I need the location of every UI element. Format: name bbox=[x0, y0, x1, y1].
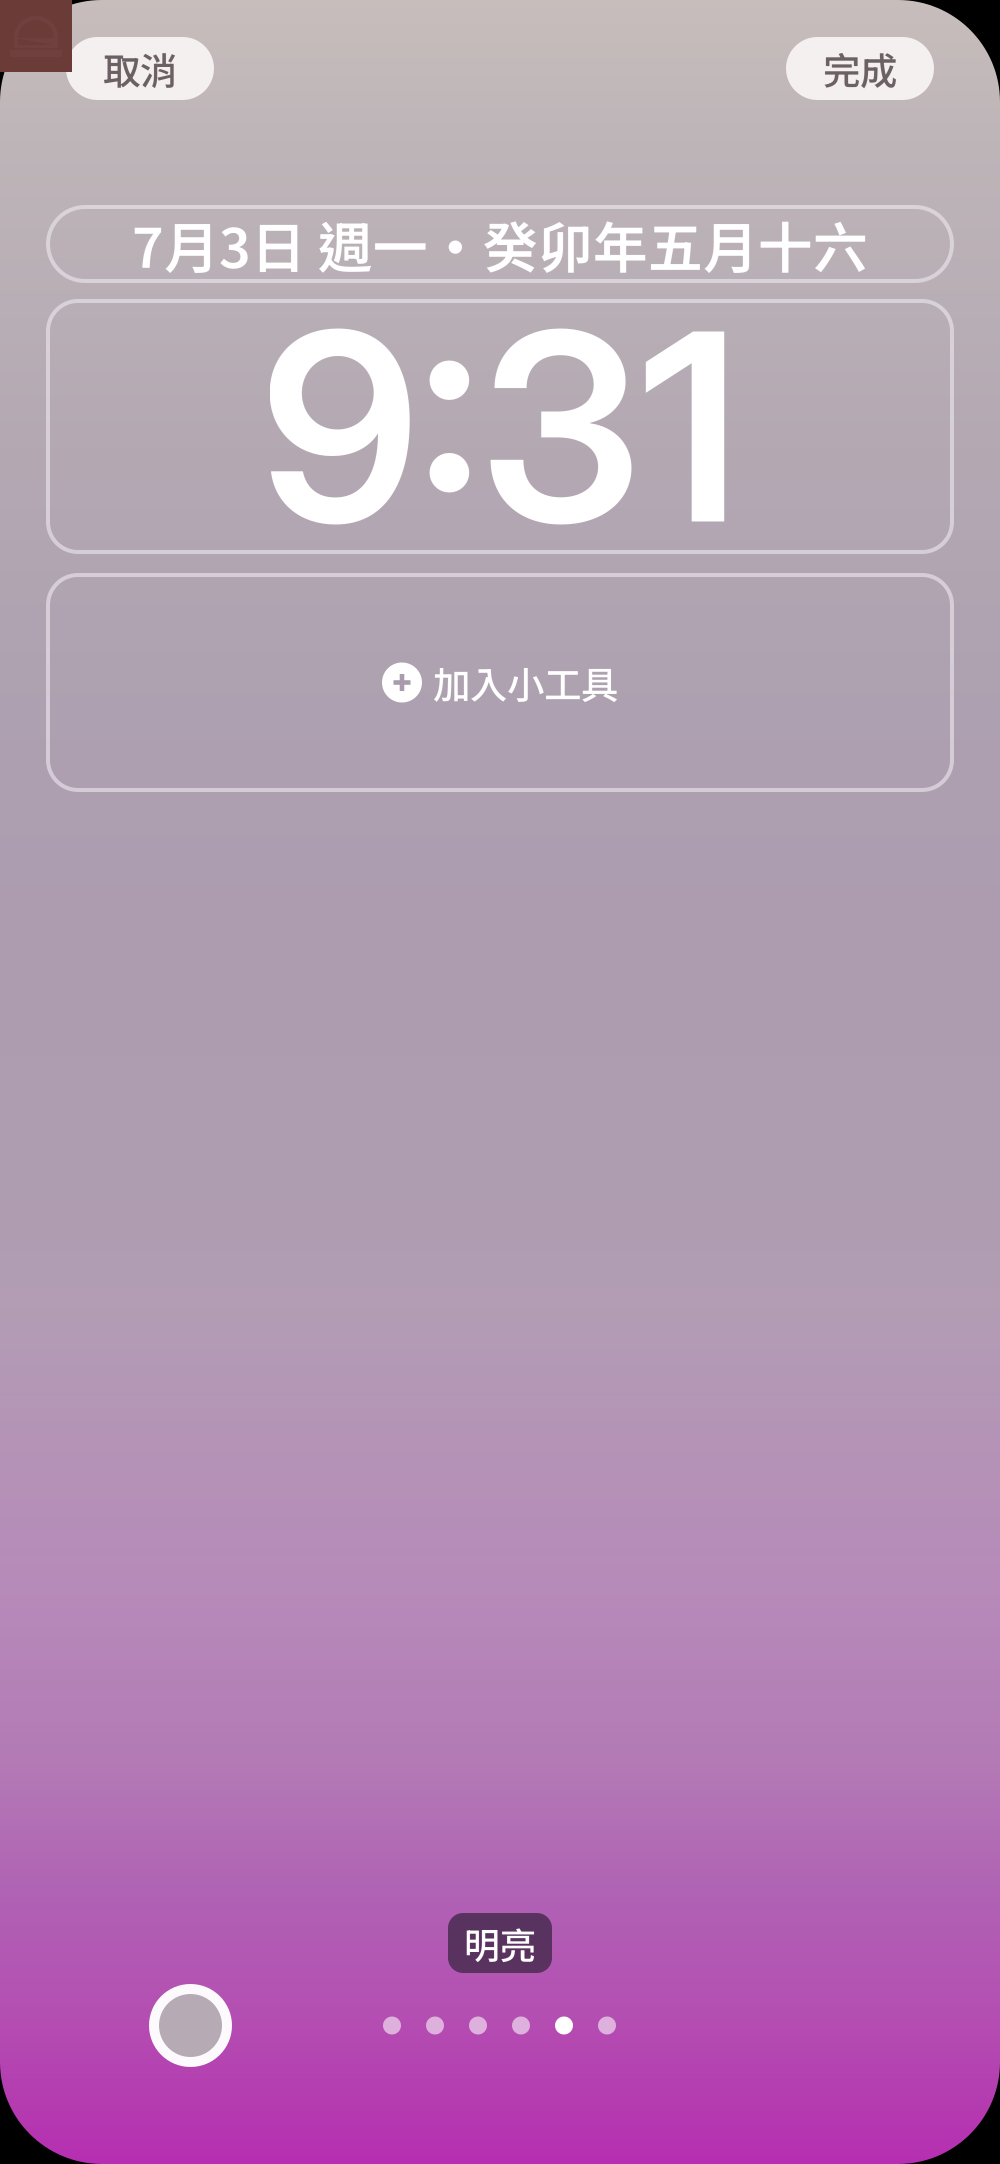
button[interactable]: 加入小工具 bbox=[48, 575, 952, 790]
button[interactable]: 9:31 bbox=[48, 301, 952, 552]
button[interactable]: 7月3日 週一・癸卯年五月十六 bbox=[48, 207, 952, 281]
button[interactable]: 背景 4 bbox=[512, 2016, 530, 2034]
staticText: 明亮 bbox=[464, 1917, 536, 1969]
button[interactable]: 完成 bbox=[786, 37, 934, 100]
button[interactable]: 背景顏色 bbox=[154, 1989, 227, 2062]
button[interactable]: 背景 2 bbox=[426, 2016, 444, 2034]
staticText: 完成 bbox=[823, 41, 897, 96]
staticText: 取消 bbox=[103, 41, 177, 96]
staticText: 加入小工具 bbox=[433, 655, 618, 710]
button[interactable]: 背景 5，已選取 bbox=[555, 2016, 573, 2034]
staticText: 9:31 bbox=[260, 268, 739, 585]
button[interactable]: 背景 6 bbox=[598, 2016, 616, 2034]
button[interactable]: 取消 bbox=[66, 37, 214, 100]
button[interactable]: 背景 3 bbox=[469, 2016, 487, 2034]
button[interactable]: 背景 1 bbox=[383, 2016, 401, 2034]
staticText: 7月3日 週一・癸卯年五月十六 bbox=[132, 204, 868, 284]
